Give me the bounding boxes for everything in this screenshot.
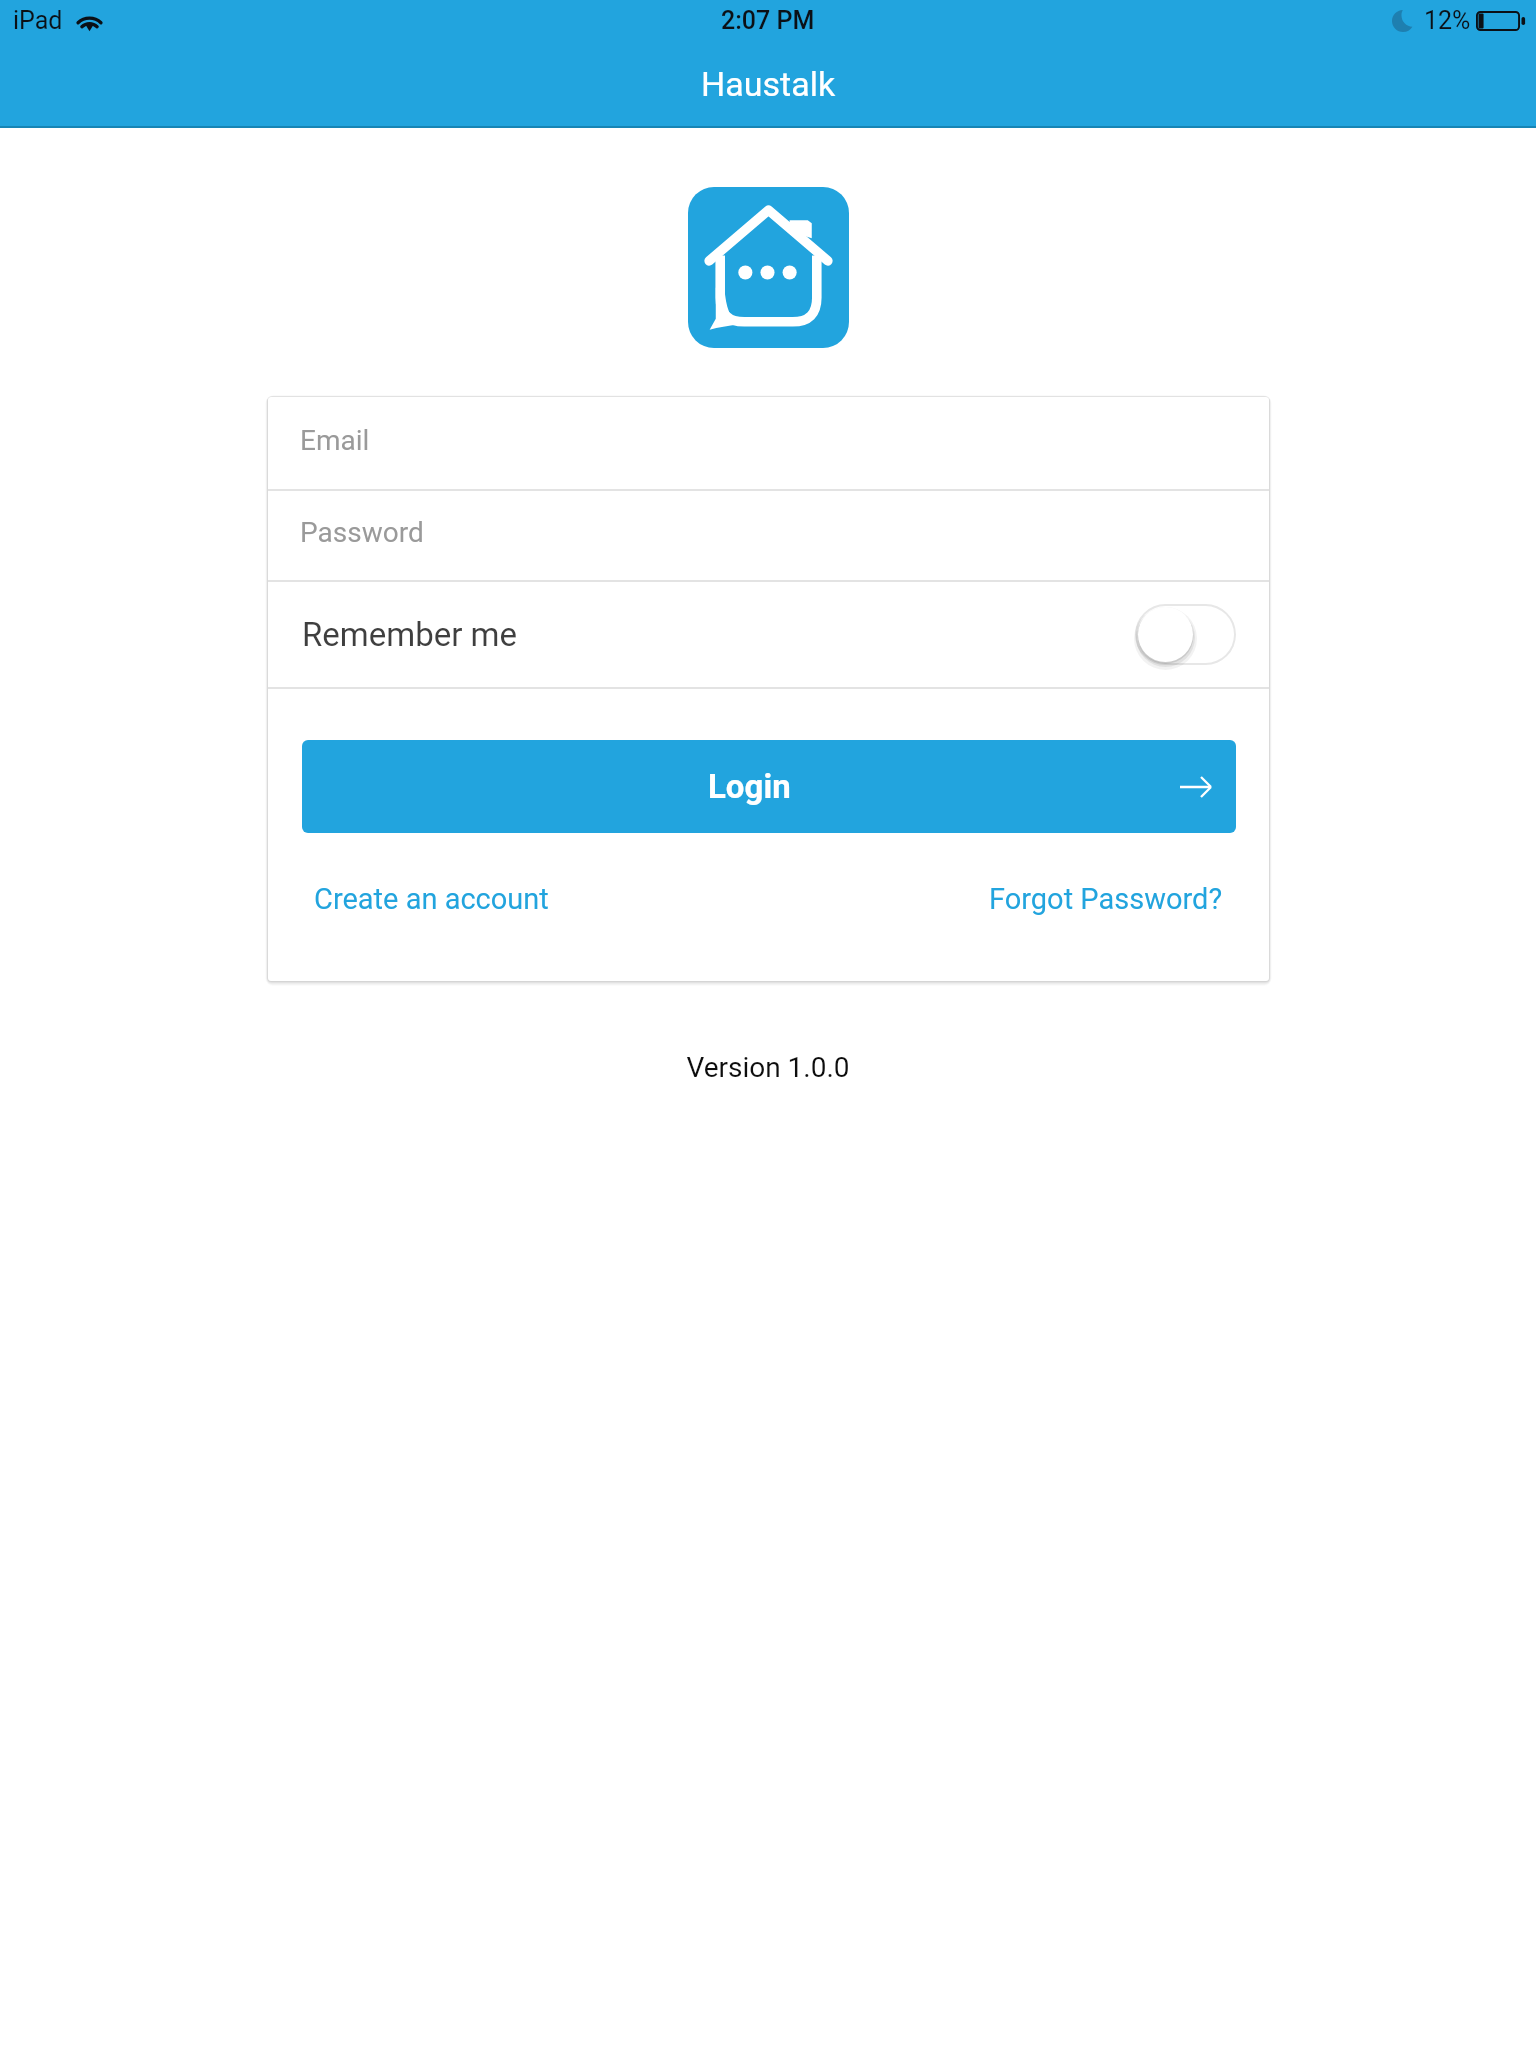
button[interactable]: Email [268, 397, 1269, 489]
button[interactable]: Login [302, 740, 1236, 833]
staticText: Login [708, 767, 791, 806]
staticText: Version 1.0.0 [0, 1051, 1536, 1084]
staticText: Haustalk [701, 64, 836, 104]
staticText: Forgot Password? [989, 882, 1223, 916]
staticText: iPad [13, 6, 63, 35]
button[interactable]: Remember me [268, 582, 1269, 687]
button[interactable]: Password [268, 491, 1269, 580]
staticText: Remember me [302, 615, 518, 654]
button[interactable]: Remember me toggle [1135, 604, 1236, 665]
staticText: Password [300, 516, 424, 549]
button[interactable]: Forgot Password? [977, 872, 1235, 926]
staticText: 12% [1424, 6, 1471, 35]
button[interactable]: Create an account [302, 872, 561, 926]
staticText: Email [300, 424, 370, 457]
staticText: Create an account [314, 882, 549, 916]
staticText: 2:07 PM [721, 6, 815, 35]
